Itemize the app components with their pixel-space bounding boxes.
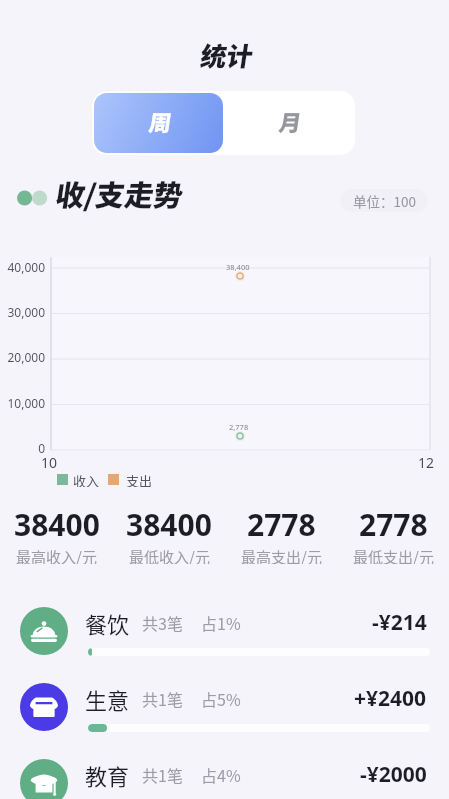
staticText: 2778 <box>359 504 428 545</box>
staticText: 共1笔 <box>142 763 183 786</box>
staticText: 2778 <box>247 504 316 545</box>
staticText: 月 <box>277 105 300 137</box>
staticText: 共1笔 <box>142 687 183 710</box>
staticText: 38400 <box>14 504 100 545</box>
staticText: 40,000 <box>7 259 45 275</box>
staticText: 支出 <box>126 471 153 487</box>
staticText: 教育 <box>85 759 130 790</box>
staticText: 20,000 <box>7 349 45 365</box>
button[interactable]: 教育 <box>0 746 449 799</box>
staticText: 占4% <box>201 763 241 786</box>
staticText: 周 <box>147 105 170 137</box>
staticText: 餐饮 <box>85 607 130 638</box>
staticText: 30,000 <box>7 304 45 320</box>
staticText: 单位：100 <box>353 191 416 211</box>
staticText: 占5% <box>201 687 241 710</box>
staticText: 收入 <box>73 471 100 487</box>
staticText: 38,400 <box>226 262 250 272</box>
button[interactable]: 月 <box>223 93 353 153</box>
staticText: 38400 <box>126 504 212 545</box>
staticText: 2,778 <box>229 422 249 432</box>
staticText: 收/支走势 <box>53 172 181 214</box>
staticText: 最低支出/元 <box>353 546 434 564</box>
staticText: -¥214 <box>372 608 427 637</box>
staticText: 10,000 <box>7 395 45 411</box>
staticText: 10 <box>41 453 58 472</box>
staticText: 最低收入/元 <box>129 546 210 564</box>
button[interactable]: 生意 <box>0 670 449 744</box>
staticText: 占1% <box>201 611 241 634</box>
staticText: 最高支出/元 <box>241 546 322 564</box>
button[interactable]: 周 <box>94 93 223 153</box>
staticText: -¥2000 <box>360 760 427 789</box>
staticText: 生意 <box>85 683 130 714</box>
staticText: 统计 <box>198 36 251 74</box>
staticText: 12 <box>418 453 435 472</box>
staticText: 共3笔 <box>142 611 183 634</box>
staticText: 0 <box>38 440 45 456</box>
staticText: +¥2400 <box>354 684 427 713</box>
staticText: 最高收入/元 <box>16 546 97 564</box>
button[interactable]: 餐饮 <box>0 594 449 668</box>
